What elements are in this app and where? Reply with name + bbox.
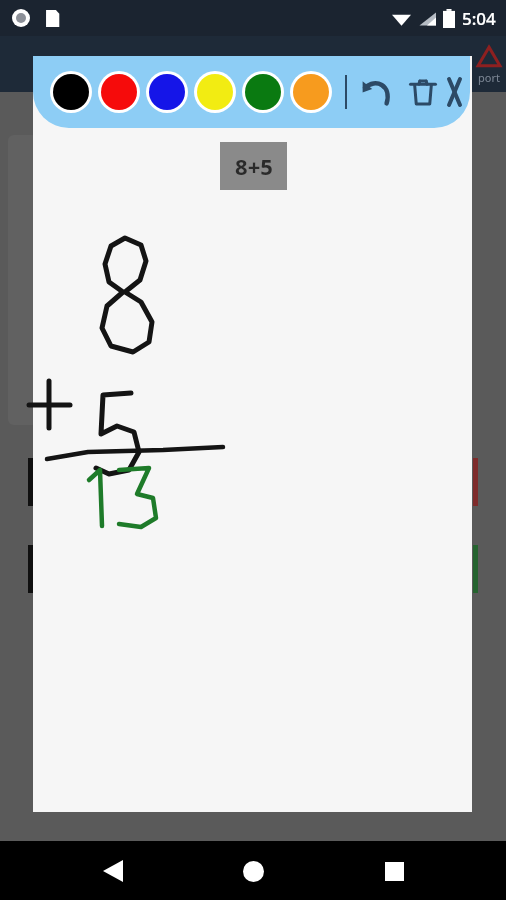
button[interactable]: Home — [225, 843, 281, 899]
button[interactable]: Red — [98, 71, 140, 113]
staticText: port — [478, 70, 500, 85]
button[interactable]: Recent apps — [366, 843, 422, 899]
button[interactable]: Orange — [290, 71, 332, 113]
button[interactable]: Back — [85, 843, 141, 899]
button[interactable]: Blue — [146, 71, 188, 113]
button[interactable]: Green — [242, 71, 284, 113]
button[interactable]: Yellow — [194, 71, 236, 113]
staticText: 5:04 — [462, 7, 496, 30]
button[interactable]: 8+5 — [220, 142, 287, 190]
button[interactable]: Delete — [403, 72, 443, 112]
button[interactable]: Undo — [357, 72, 397, 112]
button[interactable]: Close — [449, 72, 460, 112]
staticText: 8+5 — [235, 151, 273, 181]
button[interactable]: Black — [50, 71, 92, 113]
